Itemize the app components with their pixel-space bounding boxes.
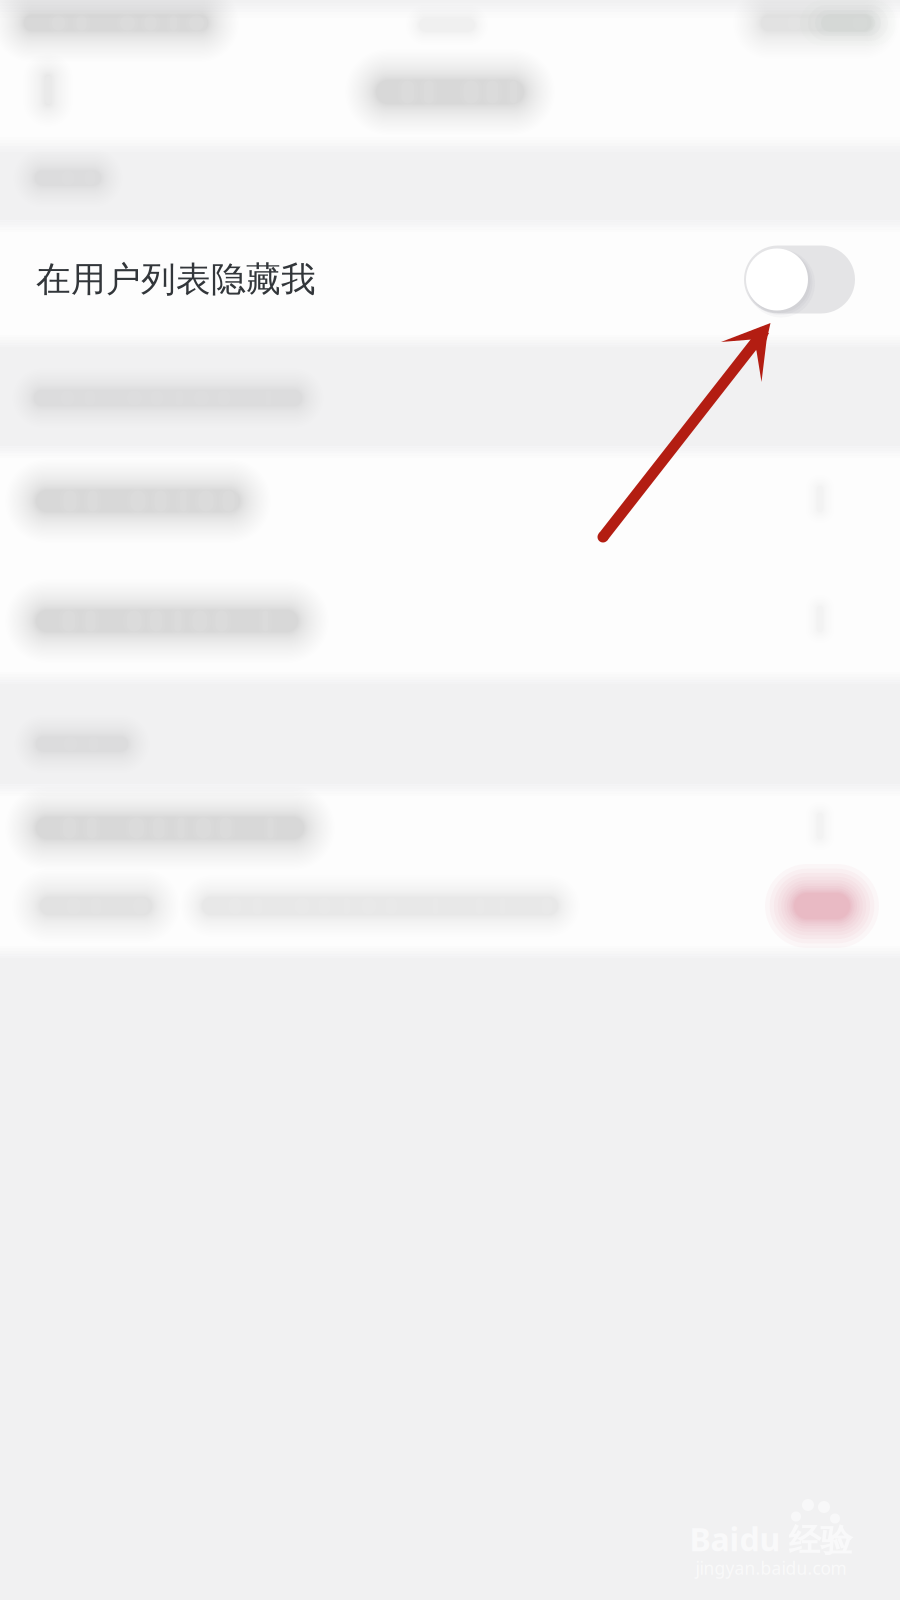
button[interactable]: Back bbox=[0, 0, 900, 1600]
staticText: Baidu 经验 bbox=[689, 1518, 852, 1560]
button[interactable]: 在用户列表隐藏我 bbox=[0, 0, 900, 1600]
button[interactable] bbox=[0, 0, 900, 1600]
button[interactable] bbox=[0, 0, 900, 1600]
button[interactable] bbox=[0, 0, 900, 1600]
staticText: 在用户列表隐藏我 bbox=[36, 258, 316, 301]
button[interactable] bbox=[0, 0, 900, 1600]
